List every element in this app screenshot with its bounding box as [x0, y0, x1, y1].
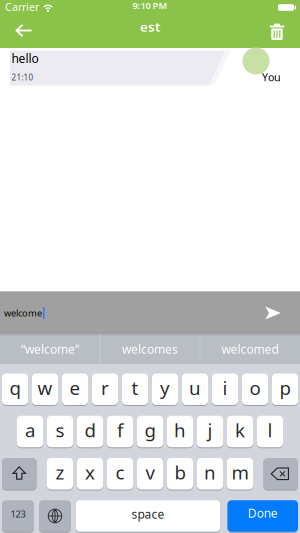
staticText: k [235, 418, 245, 442]
staticText: welcome [4, 307, 42, 319]
staticText: v [145, 460, 154, 485]
button[interactable]: o [242, 373, 268, 405]
button[interactable]: t [122, 373, 148, 405]
button[interactable]: space [76, 500, 220, 532]
staticText: 9:10 PM [132, 0, 167, 12]
button[interactable]: n [197, 458, 223, 489]
staticText: u [189, 375, 201, 400]
staticText: r [101, 375, 109, 400]
button[interactable]: welcomes [100, 334, 200, 364]
button[interactable]: Back [8, 17, 40, 43]
staticText: e [69, 375, 80, 400]
button[interactable]: g [137, 416, 163, 447]
button[interactable]: k [227, 416, 253, 447]
button[interactable]: Shift [2, 458, 36, 489]
button[interactable]: c [107, 458, 133, 489]
button[interactable]: a [17, 416, 43, 447]
button[interactable]: Next keyboard [39, 500, 71, 532]
staticText: m [231, 460, 248, 485]
staticText: welcomes [122, 341, 178, 357]
button[interactable]: Delete [263, 458, 298, 489]
staticText: f [117, 418, 123, 442]
button[interactable]: s [47, 416, 73, 447]
staticText: hello [11, 50, 38, 66]
staticText: h [174, 418, 186, 442]
staticText: 123 [10, 508, 25, 520]
button[interactable]: p [272, 373, 298, 405]
button[interactable]: Done [227, 500, 298, 532]
staticText: i [222, 375, 227, 400]
button[interactable]: j [197, 416, 223, 447]
button[interactable]: w [32, 373, 58, 405]
button[interactable]: r [92, 373, 118, 405]
staticText: x [85, 460, 95, 485]
button[interactable]: i [212, 373, 238, 405]
button[interactable]: m [227, 458, 253, 489]
button[interactable]: x [77, 458, 103, 489]
staticText: “welcome” [21, 341, 79, 357]
button[interactable]: q [2, 373, 28, 405]
button[interactable]: f [107, 416, 133, 447]
button[interactable]: l [257, 416, 283, 447]
staticText: y [160, 375, 170, 400]
staticText: d [84, 418, 95, 442]
staticText: q [9, 375, 20, 400]
staticText: j [207, 418, 212, 442]
staticText: n [204, 460, 216, 485]
staticText: b [174, 460, 185, 485]
staticText: z [55, 460, 64, 485]
staticText: est [140, 18, 160, 35]
button[interactable]: b [167, 458, 193, 489]
button[interactable]: e [62, 373, 88, 405]
button[interactable]: z [47, 458, 73, 489]
button[interactable]: 123 [2, 500, 34, 532]
staticText: Done [248, 505, 278, 521]
staticText: t [131, 375, 138, 400]
staticText: o [249, 375, 260, 400]
staticText: p [279, 375, 290, 400]
staticText: w [37, 375, 52, 400]
button[interactable]: y [152, 373, 178, 405]
button[interactable]: u [182, 373, 208, 405]
staticText: You [262, 70, 281, 84]
button[interactable]: “welcome” [0, 334, 100, 364]
staticText: space [131, 506, 164, 522]
button[interactable]: d [77, 416, 103, 447]
staticText: welcomed [221, 341, 278, 357]
button[interactable]: Delete chat [262, 18, 292, 44]
button[interactable]: Message field [4, 292, 254, 334]
button[interactable]: v [137, 458, 163, 489]
staticText: s [55, 418, 64, 442]
staticText: g [144, 418, 155, 442]
staticText: 21:10 [11, 72, 33, 83]
button[interactable]: h [167, 416, 193, 447]
staticText: a [25, 418, 35, 442]
staticText: l [267, 418, 272, 442]
staticText: Carrier [5, 0, 39, 14]
button[interactable]: Send [255, 292, 291, 334]
staticText: c [115, 460, 124, 485]
button[interactable]: welcomed [200, 334, 300, 364]
